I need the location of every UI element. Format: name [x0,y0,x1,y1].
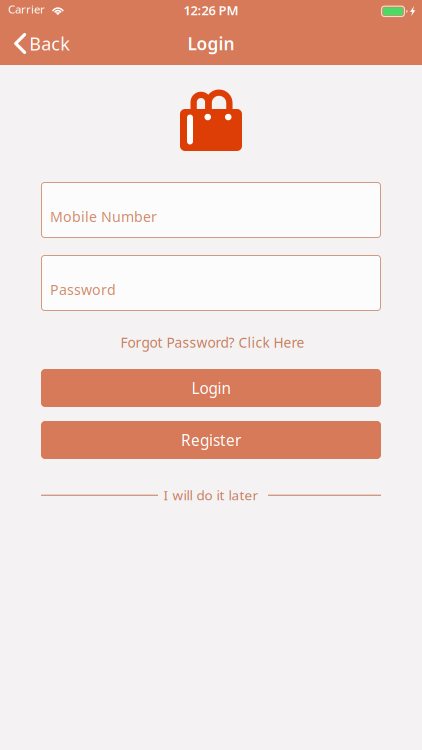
button[interactable]: Back [0,22,80,65]
staticText: Login [187,32,234,55]
staticText: Back [29,31,70,56]
button[interactable]: Register [41,421,381,459]
staticText: Carrier [8,1,45,17]
button[interactable]: I will do it later [41,486,381,504]
button[interactable]: Forgot Password? Click Here [42,329,382,355]
staticText: Forgot Password? Click Here [120,333,304,352]
staticText: I will do it later [163,486,258,504]
button[interactable]: Login [41,369,381,407]
staticText: Register [181,430,241,450]
staticText: 12:26 PM [183,1,238,19]
staticText: Mobile Number [50,207,157,226]
staticText: Login [191,378,230,398]
staticText: Password [50,280,116,299]
